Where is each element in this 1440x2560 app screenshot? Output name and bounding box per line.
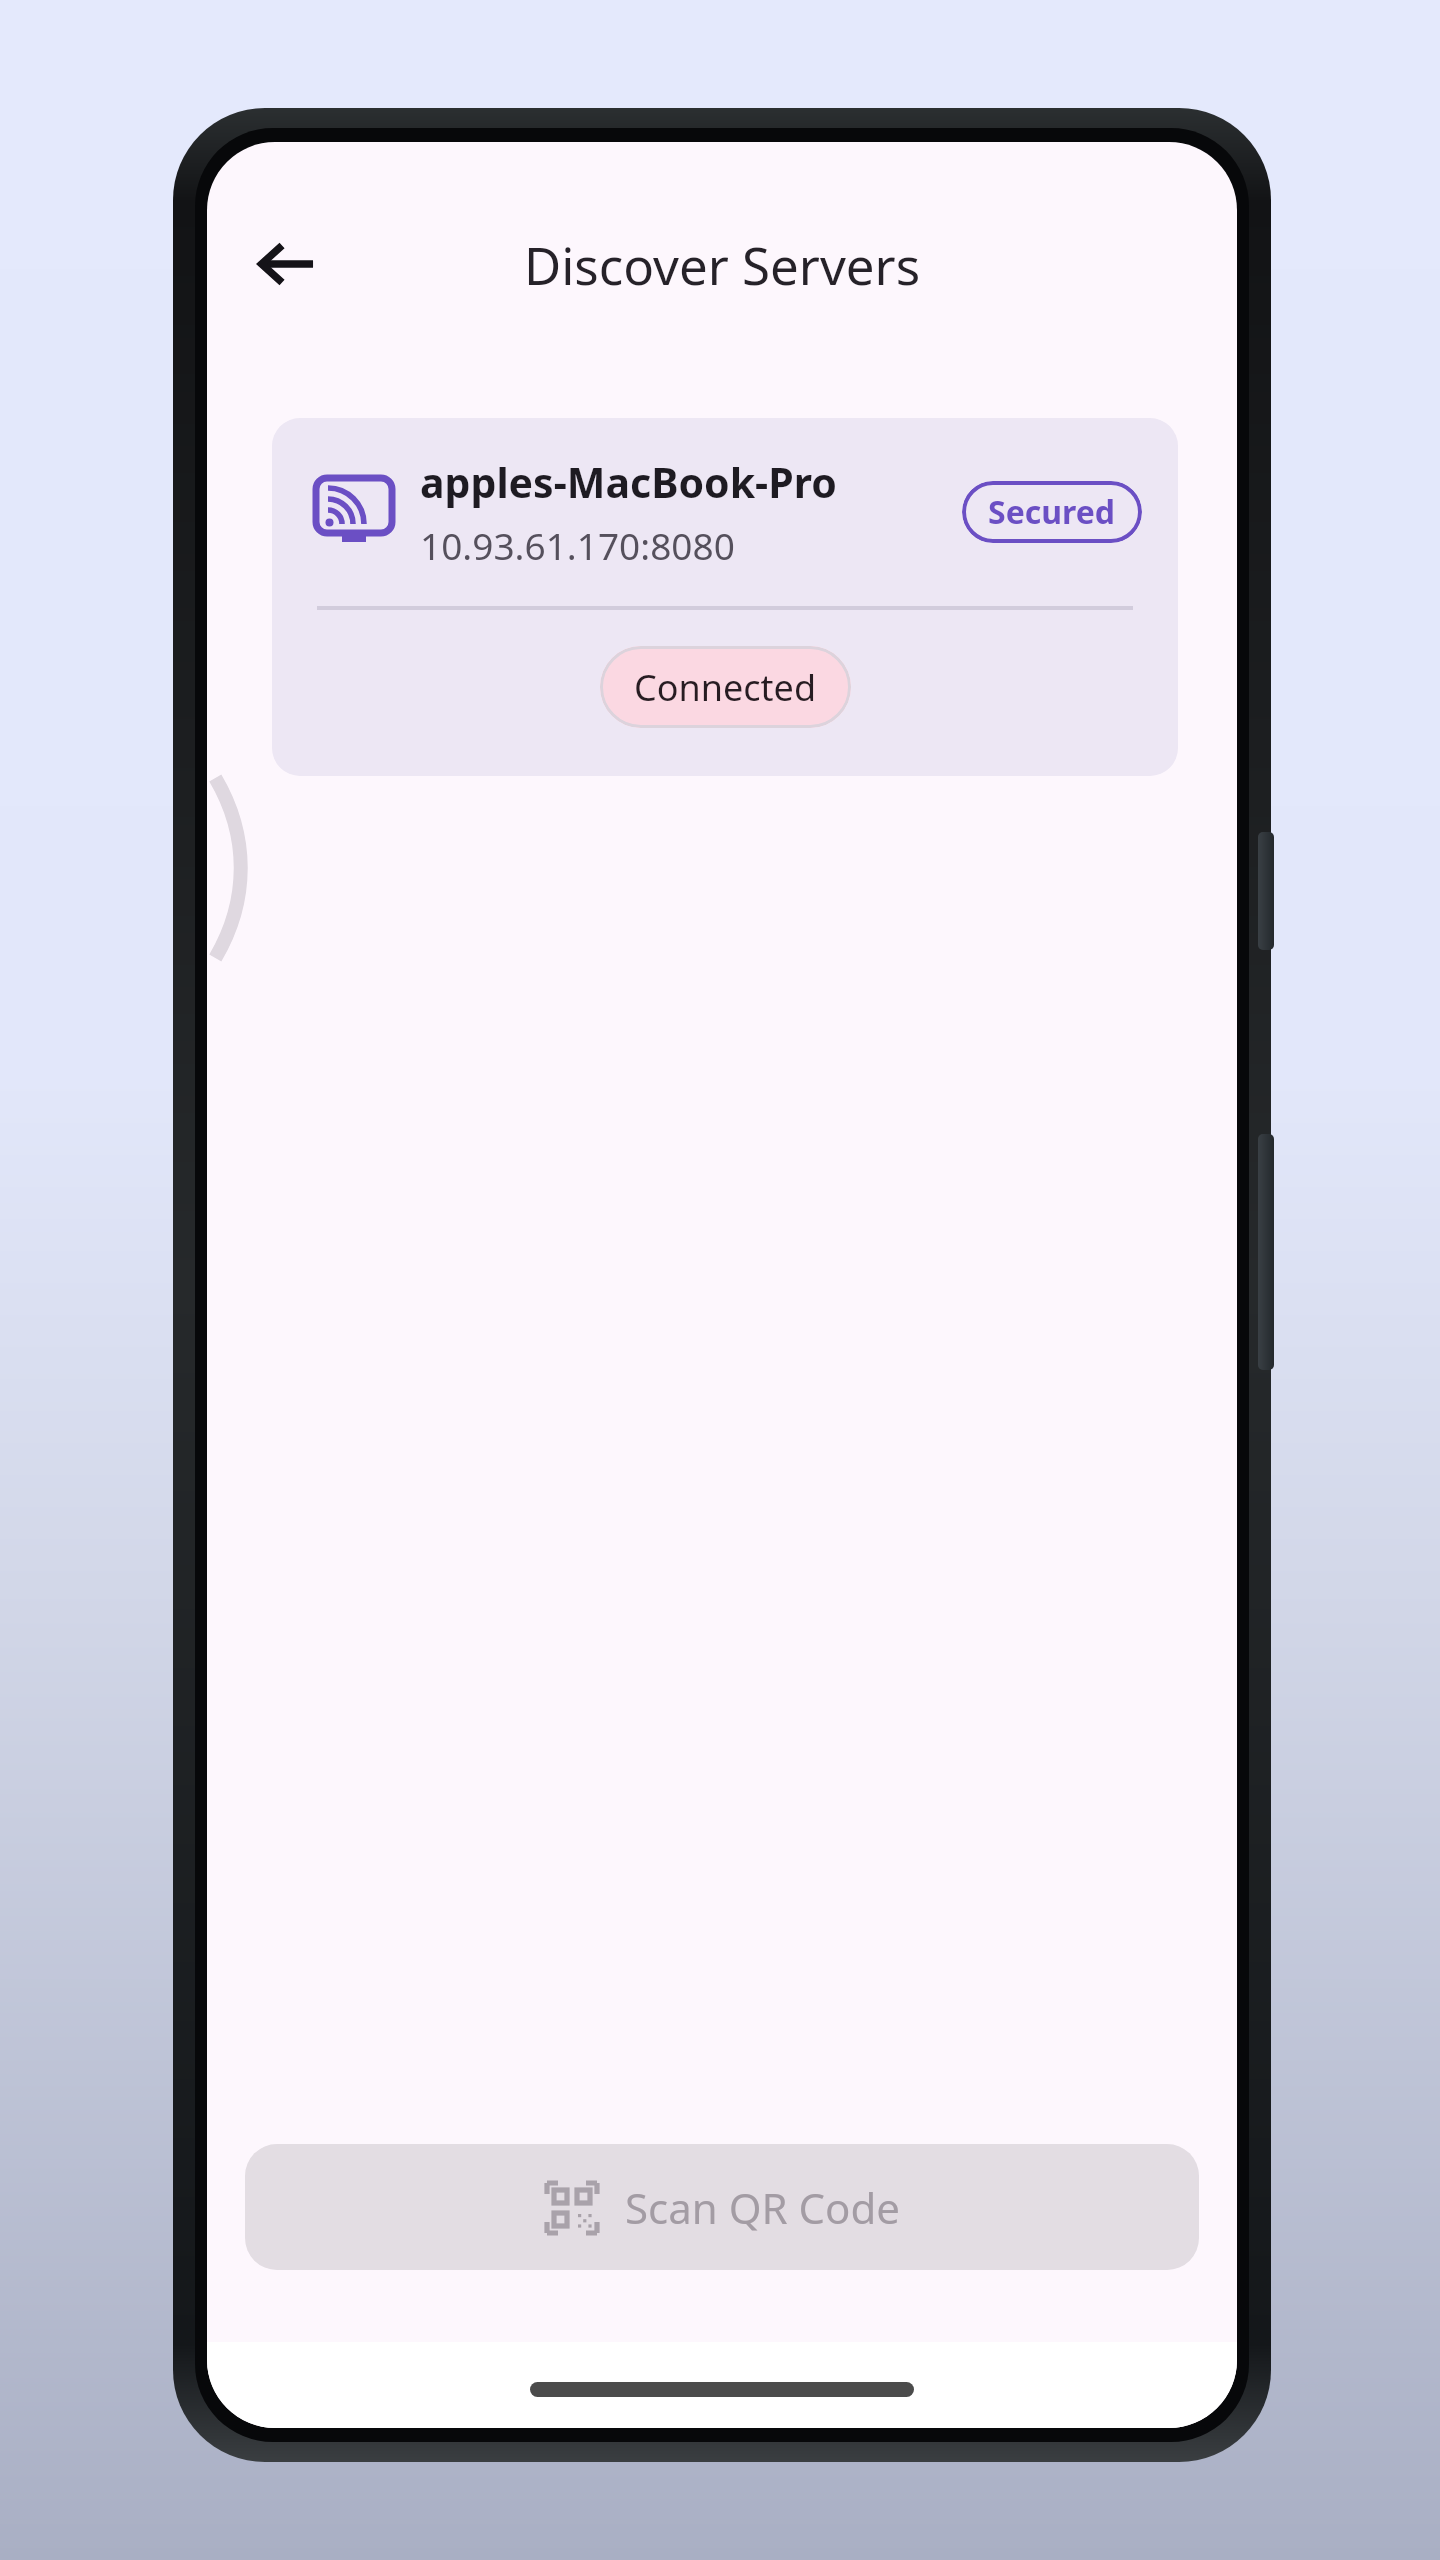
staticText: Connected xyxy=(634,663,817,712)
button[interactable]: apples-MacBook-Pro xyxy=(272,418,1178,776)
button[interactable]: Scan QR Code xyxy=(245,2144,1199,2270)
staticText: Discover Servers xyxy=(207,230,1237,299)
button[interactable]: Secured xyxy=(962,481,1142,543)
staticText: Scan QR Code xyxy=(625,2179,900,2236)
staticText: apples-MacBook-Pro xyxy=(420,454,837,510)
button[interactable]: Back xyxy=(237,214,337,314)
staticText: Secured xyxy=(988,490,1116,534)
staticText: 10.93.61.170:8080 xyxy=(420,520,735,570)
button[interactable]: Connected xyxy=(600,646,851,728)
